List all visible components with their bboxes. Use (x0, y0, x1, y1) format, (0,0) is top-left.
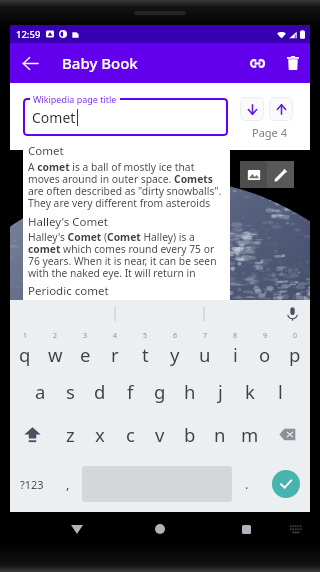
staticText: 9 (263, 331, 268, 341)
staticText: g (154, 379, 166, 404)
staticText: i (233, 342, 238, 367)
staticText: 1 (23, 331, 28, 341)
button[interactable]: 0 (280, 328, 310, 370)
staticText: r (111, 342, 119, 367)
staticText: h (184, 379, 196, 404)
staticText: Wikipedia page title (33, 93, 117, 105)
button[interactable]: l (265, 370, 295, 412)
button[interactable]: Recent apps (228, 512, 264, 546)
button[interactable]: Voice input (282, 304, 302, 324)
staticText: b (184, 422, 196, 447)
staticText: v (155, 422, 165, 447)
button[interactable]: a (25, 370, 55, 412)
button[interactable]: Home (142, 512, 178, 546)
staticText: y (170, 342, 180, 367)
staticText: Comet (32, 108, 76, 127)
staticText: Halley's Comet (Comet Halley) is a comet… (28, 230, 224, 280)
button[interactable]: Next page (240, 97, 264, 121)
button[interactable]: Backspace (265, 412, 310, 456)
button[interactable]: n (205, 412, 235, 456)
staticText: m (241, 422, 259, 447)
staticText: Halley's Comet (28, 214, 108, 230)
staticText: p (289, 342, 301, 367)
button[interactable]: Back (59, 512, 95, 546)
staticText: 8 (233, 331, 238, 341)
button[interactable]: c (115, 412, 145, 456)
staticText: s (66, 379, 75, 404)
button[interactable]: j (205, 370, 235, 412)
button[interactable]: 1 (10, 328, 40, 370)
staticText: x (95, 422, 105, 447)
staticText: e (80, 342, 91, 367)
button[interactable]: ?123 (10, 456, 53, 512)
staticText: 7 (203, 331, 208, 341)
button[interactable]: Delete (275, 43, 310, 83)
button[interactable]: Done (272, 470, 300, 498)
button[interactable]: 4 (100, 328, 130, 370)
staticText: 12:59 (16, 28, 41, 41)
button[interactable]: z (55, 412, 85, 456)
button[interactable]: Copy link (240, 43, 275, 83)
staticText: A comet is a ball of mostly ice that mov… (28, 160, 224, 210)
button[interactable]: , (53, 456, 82, 512)
staticText: Baby Book (62, 53, 138, 73)
button[interactable]: . (232, 456, 261, 512)
button[interactable]: Back (10, 43, 50, 83)
button[interactable]: Edit (267, 161, 294, 188)
staticText: k (245, 379, 255, 404)
staticText: 5 (143, 331, 148, 341)
staticText: w (48, 342, 63, 367)
staticText: ?123 (20, 477, 44, 492)
button[interactable]: b (175, 412, 205, 456)
button[interactable]: Pick image (240, 161, 267, 188)
staticText: 3 (83, 331, 88, 341)
button[interactable]: 2 (40, 328, 70, 370)
staticText: 2 (53, 331, 58, 341)
button[interactable]: f (115, 370, 145, 412)
button[interactable]: g (145, 370, 175, 412)
button[interactable]: Previous page (269, 97, 293, 121)
button[interactable]: 7 (190, 328, 220, 370)
staticText: z (66, 422, 75, 447)
staticText: . (245, 475, 249, 493)
button[interactable]: 9 (250, 328, 280, 370)
button[interactable]: 6 (160, 328, 190, 370)
button[interactable]: v (145, 412, 175, 456)
staticText: 6 (173, 331, 178, 341)
staticText: 0 (293, 331, 298, 341)
staticText: c (126, 422, 135, 447)
button[interactable]: Comet (23, 98, 228, 136)
button[interactable]: m (235, 412, 265, 456)
staticText: t (142, 342, 149, 367)
staticText: j (218, 379, 223, 404)
staticText: Periodic comet (28, 283, 109, 299)
staticText: 4 (113, 331, 118, 341)
staticText: , (66, 475, 70, 493)
button[interactable]: x (85, 412, 115, 456)
staticText: o (259, 342, 271, 367)
button[interactable]: s (55, 370, 85, 412)
staticText: d (94, 379, 106, 404)
button[interactable]: Shift (10, 412, 55, 456)
staticText: Comet (28, 143, 64, 159)
button[interactable]: 3 (70, 328, 100, 370)
staticText: a (35, 379, 46, 404)
button[interactable]: d (85, 370, 115, 412)
staticText: Page 4 (252, 125, 287, 140)
button[interactable]: h (175, 370, 205, 412)
button[interactable]: k (235, 370, 265, 412)
staticText: n (214, 422, 226, 447)
staticText: l (278, 379, 283, 404)
button[interactable]: Switch keyboard (281, 512, 311, 546)
staticText: q (19, 342, 31, 367)
button[interactable]: 5 (130, 328, 160, 370)
staticText: f (127, 379, 134, 404)
staticText: u (199, 342, 211, 367)
button[interactable]: 8 (220, 328, 250, 370)
